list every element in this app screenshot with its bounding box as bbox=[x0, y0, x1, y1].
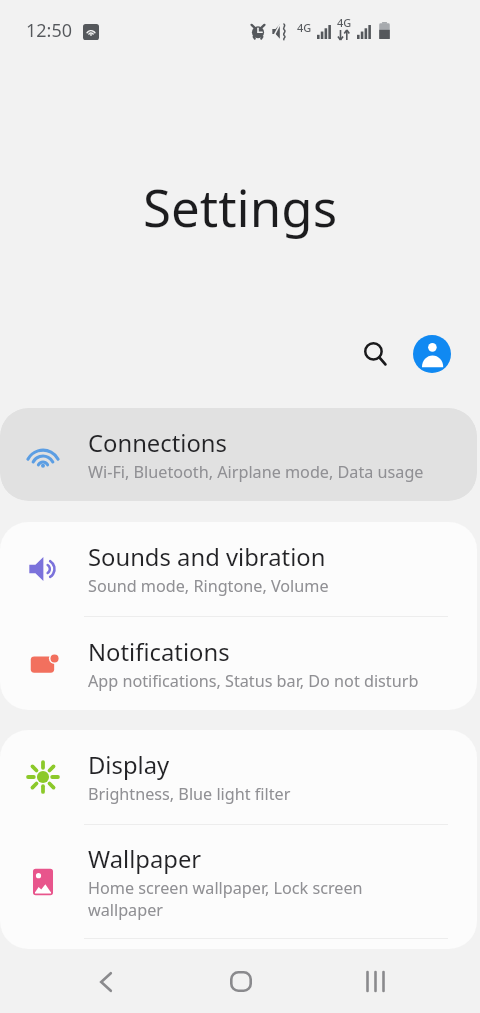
staticText: Settings bbox=[143, 172, 338, 241]
staticText: 4G bbox=[337, 15, 352, 30]
button[interactable]: Wallpaper bbox=[0, 825, 477, 938]
staticText: Connections bbox=[88, 427, 227, 459]
staticText: 4G bbox=[297, 20, 312, 35]
staticText: App notifications, Status bar, Do not di… bbox=[88, 670, 419, 692]
button[interactable]: Display bbox=[0, 730, 477, 824]
staticText: Notifications bbox=[88, 636, 230, 668]
staticText: 12:50 bbox=[26, 18, 73, 43]
button[interactable]: Recent apps bbox=[345, 950, 405, 1013]
button[interactable]: Account bbox=[413, 335, 451, 373]
button[interactable]: Search bbox=[353, 332, 397, 376]
button[interactable]: Connections bbox=[0, 408, 477, 501]
staticText: Brightness, Blue light filter bbox=[88, 783, 291, 805]
button[interactable]: Back bbox=[76, 950, 136, 1013]
button[interactable]: Notifications bbox=[0, 617, 477, 710]
staticText: Display bbox=[88, 749, 170, 781]
staticText: Wi-Fi, Bluetooth, Airplane mode, Data us… bbox=[88, 461, 424, 483]
button[interactable]: Home bbox=[211, 950, 271, 1013]
staticText: Sound mode, Ringtone, Volume bbox=[88, 575, 329, 597]
staticText: Wallpaper bbox=[88, 843, 202, 875]
button[interactable]: Sounds and vibration bbox=[0, 522, 477, 616]
staticText: Home screen wallpaper, Lock screen wallp… bbox=[88, 877, 440, 921]
staticText: Sounds and vibration bbox=[88, 541, 326, 573]
